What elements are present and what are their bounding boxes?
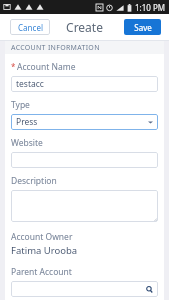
button[interactable]: Search Parent Account — [11, 281, 158, 297]
staticText: Account Owner — [11, 231, 73, 243]
staticText: Fatima Urooba — [11, 244, 78, 257]
staticText: Account Name — [17, 61, 76, 73]
staticText: Save — [134, 22, 152, 33]
button[interactable]: testacc — [11, 76, 158, 92]
button[interactable] — [11, 190, 158, 222]
button[interactable]: Cancel — [10, 19, 50, 35]
staticText: ACCOUNT INFORMATION — [11, 43, 100, 53]
button[interactable]: Press — [11, 114, 158, 130]
staticText: 1:10 PM — [135, 2, 166, 13]
staticText: Parent Account — [11, 266, 72, 278]
staticText: Website — [11, 137, 43, 149]
button[interactable] — [11, 152, 158, 168]
staticText: Description — [11, 175, 57, 187]
staticText: Create — [66, 19, 103, 35]
staticText: testacc — [16, 78, 44, 90]
staticText: Type — [11, 99, 30, 111]
staticText: Press — [16, 116, 38, 128]
staticText: Cancel — [18, 22, 43, 33]
staticText: * — [11, 61, 16, 72]
button[interactable]: Save — [124, 19, 161, 35]
